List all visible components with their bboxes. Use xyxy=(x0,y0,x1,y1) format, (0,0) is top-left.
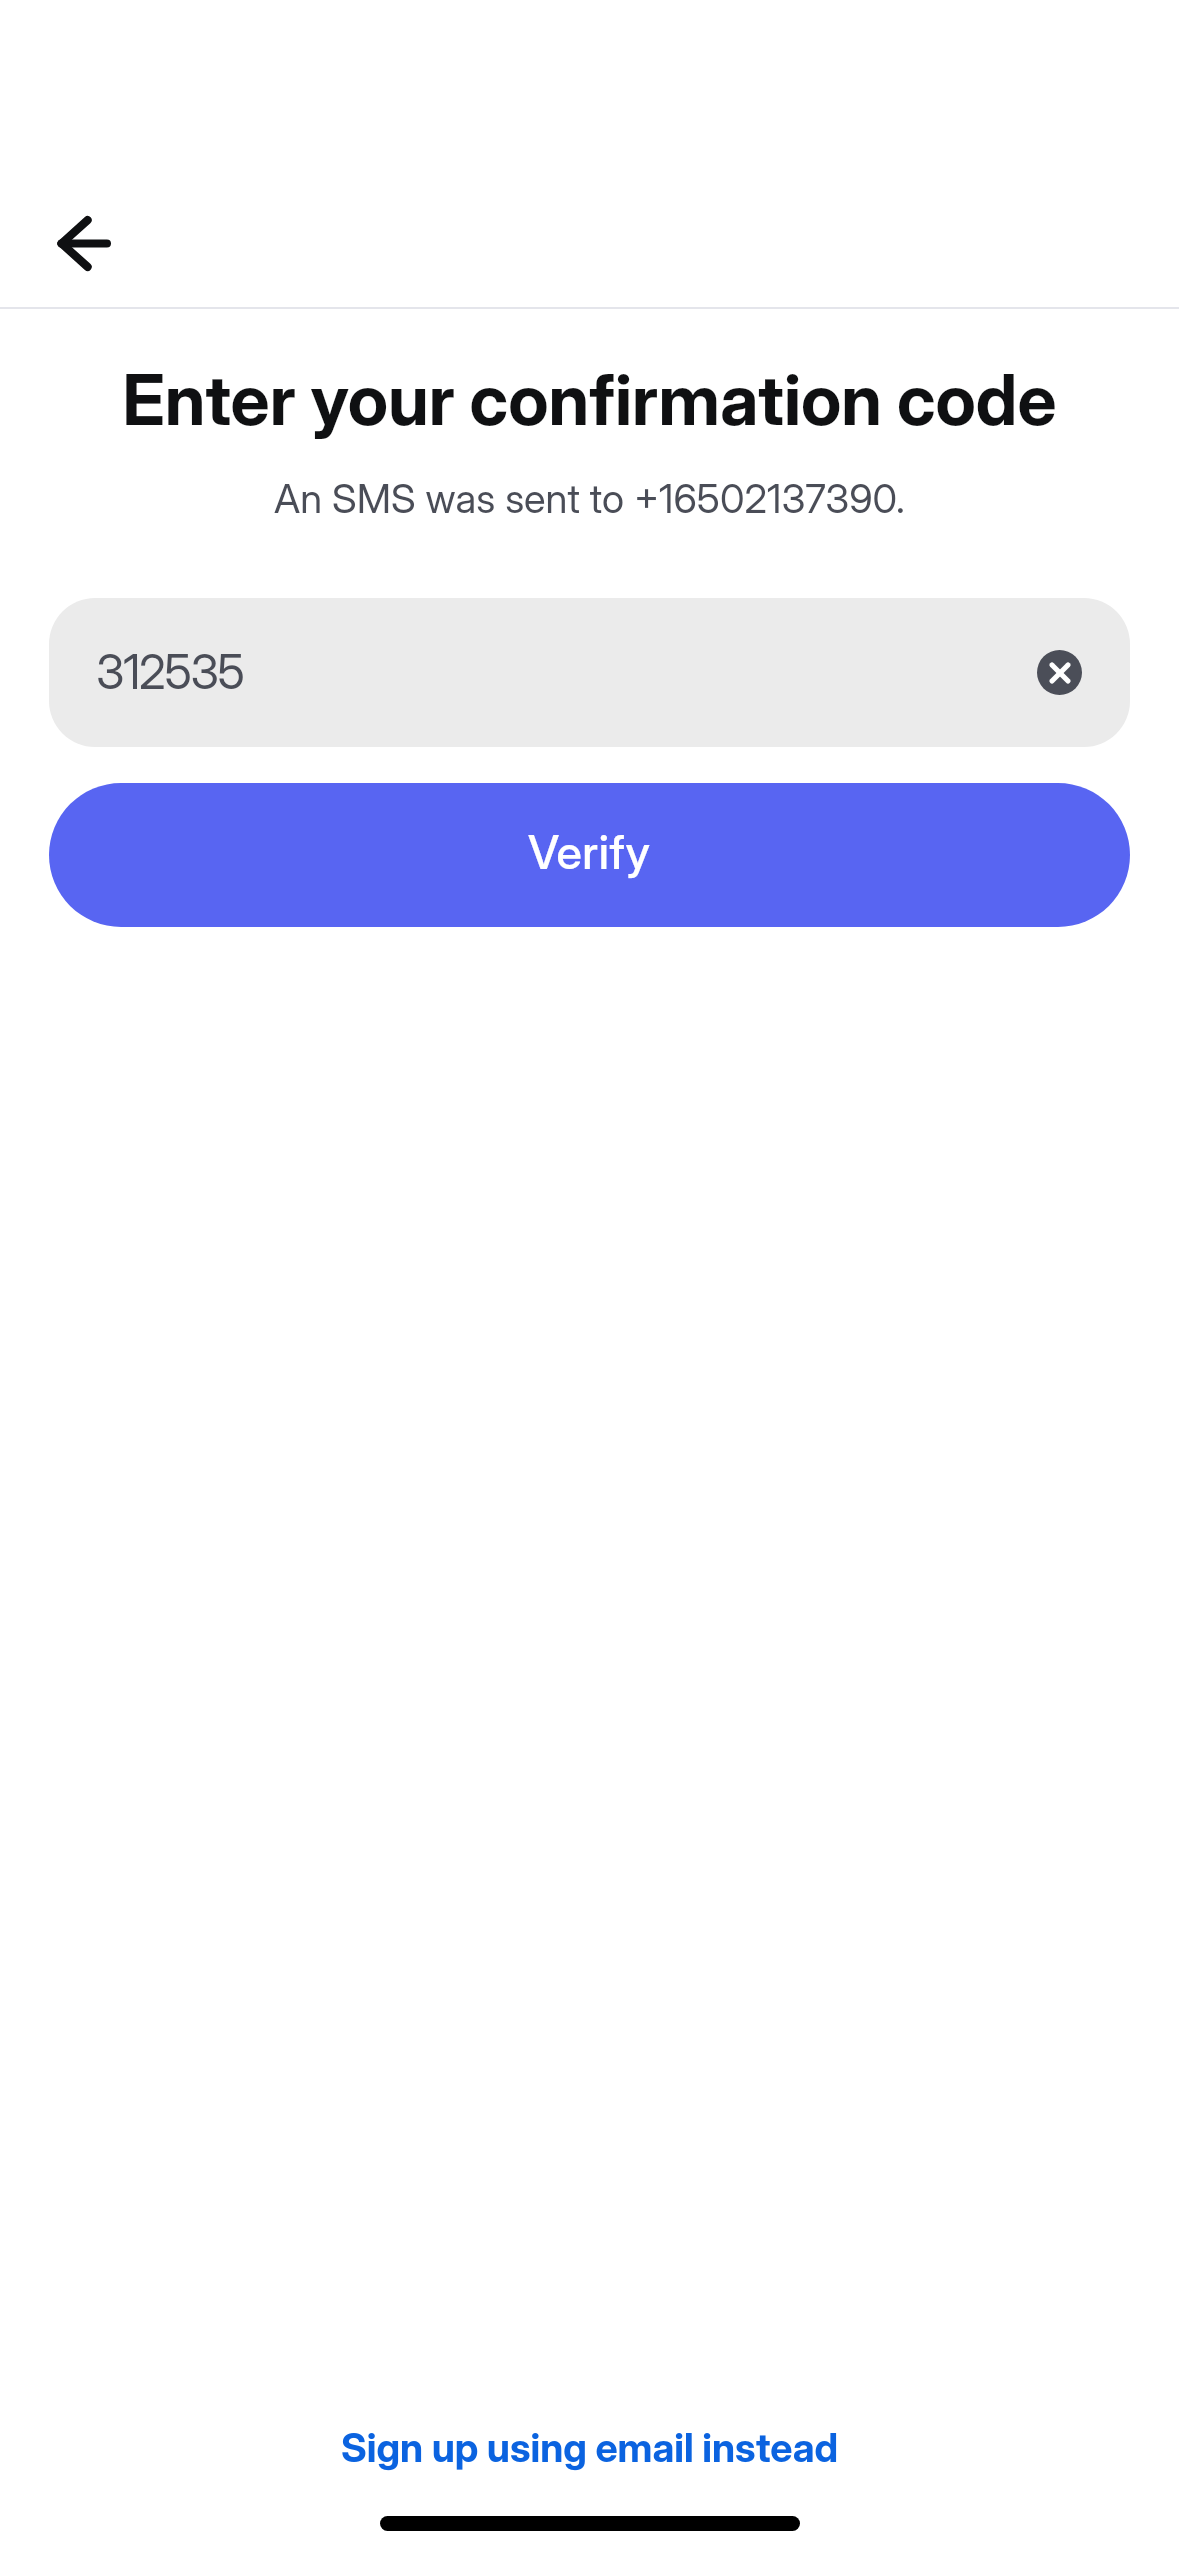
button[interactable]: Back xyxy=(27,186,141,300)
staticText: 312535 xyxy=(96,643,244,700)
button[interactable]: 312535 xyxy=(49,598,1130,747)
button[interactable]: Clear code xyxy=(1037,650,1082,695)
button[interactable]: Sign up using email instead xyxy=(317,2412,863,2484)
staticText: Sign up using email instead xyxy=(341,2424,839,2472)
staticText: Enter your confirmation code xyxy=(0,358,1179,442)
staticText: An SMS was sent to +16502137390. xyxy=(0,474,1179,522)
staticText: Verify xyxy=(528,824,651,880)
button[interactable]: Verify xyxy=(49,783,1130,927)
